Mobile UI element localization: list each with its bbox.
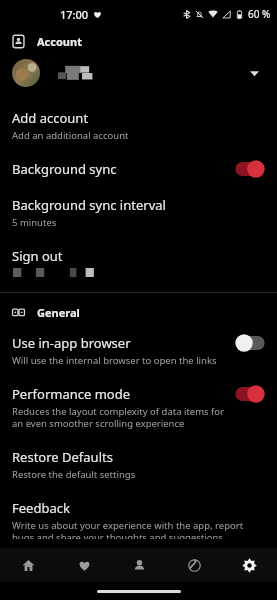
button[interactable]: Sign out [0, 238, 277, 286]
staticText: Reduces the layout complexity of data it… [12, 405, 225, 430]
button[interactable]: Performance mode [0, 376, 277, 439]
staticText: Will use the internal browser to open th… [12, 354, 217, 367]
button[interactable]: Switch account [0, 54, 277, 92]
staticText: Write us about your experience with the … [12, 519, 265, 539]
staticText: Feedback [12, 499, 70, 517]
button[interactable]: Favorites [56, 548, 112, 582]
button[interactable]: Background sync interval [0, 187, 277, 238]
staticText: Add account [12, 109, 89, 127]
button[interactable]: Home [0, 548, 56, 582]
staticText: General [37, 305, 80, 320]
staticText: Background sync [12, 160, 117, 178]
staticText: Background sync interval [12, 196, 166, 214]
staticText: Sign out [12, 247, 63, 265]
staticText: Account [37, 34, 82, 49]
staticText: Restore Defaults [12, 448, 113, 466]
button[interactable]: Background sync [0, 151, 277, 187]
staticText: Restore the default settings [12, 468, 136, 481]
staticText: 17:00 [60, 7, 89, 22]
button[interactable]: Add account [0, 100, 277, 151]
staticText: 5 minutes [12, 216, 57, 229]
button[interactable]: Switch account [243, 62, 265, 84]
button[interactable]: Use in-app browser [0, 325, 277, 376]
button[interactable]: Performance mode [233, 385, 267, 403]
button[interactable]: Settings [222, 548, 277, 582]
staticText: 60 % [248, 7, 271, 21]
button[interactable]: Restore Defaults [0, 439, 277, 490]
staticText: Add an additional account [12, 129, 129, 142]
button[interactable]: Use in-app browser [233, 334, 267, 352]
staticText: Use in-app browser [12, 334, 131, 352]
button[interactable]: Profile [112, 548, 167, 582]
button[interactable]: Feedback [0, 490, 277, 548]
button[interactable]: Background sync [233, 160, 267, 178]
staticText: Performance mode [12, 385, 131, 403]
button[interactable]: Explore [167, 548, 222, 582]
